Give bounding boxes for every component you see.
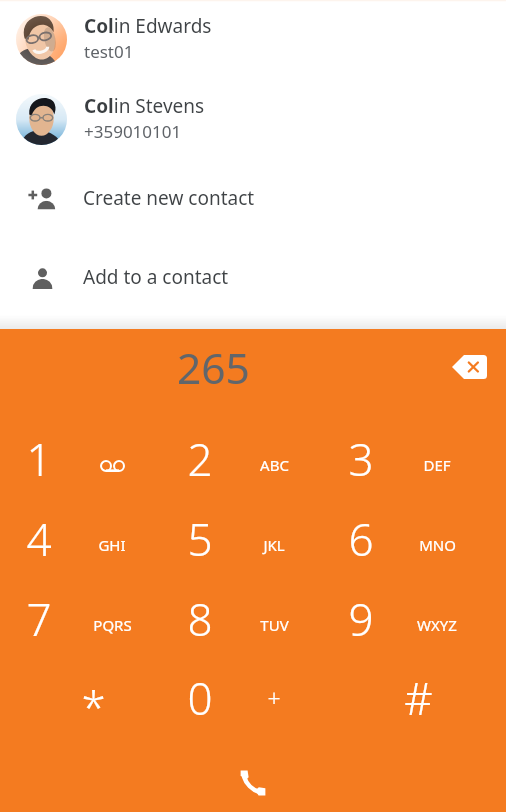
staticText: 0 <box>187 668 213 728</box>
staticText: +359010101 <box>84 120 182 143</box>
button[interactable]: Backspace <box>443 341 495 393</box>
staticText: 9 <box>348 589 374 649</box>
staticText: 2 <box>187 429 213 489</box>
staticText: 4 <box>26 509 52 569</box>
button[interactable]: 7 <box>0 580 169 660</box>
staticText: PQRS <box>93 615 132 635</box>
staticText: # <box>404 668 433 728</box>
staticText: * <box>81 677 106 737</box>
staticText: Add to a contact <box>83 264 229 290</box>
button[interactable]: Colin Edwards <box>0 0 506 80</box>
button[interactable]: 2 <box>169 420 338 500</box>
button[interactable]: 5 <box>169 500 338 580</box>
staticText: DEF <box>423 455 451 475</box>
staticText: 1 <box>26 429 52 489</box>
staticText: JKL <box>263 535 285 555</box>
staticText: Colin Stevens <box>84 93 205 119</box>
button[interactable]: Colin Stevens <box>0 80 506 160</box>
staticText: test01 <box>84 40 134 63</box>
button[interactable]: * <box>0 659 169 739</box>
button[interactable]: 6 <box>337 500 506 580</box>
button[interactable]: 8 <box>169 580 338 660</box>
button[interactable]: 9 <box>337 580 506 660</box>
button[interactable]: 0 <box>169 659 338 739</box>
staticText: 6 <box>348 509 374 569</box>
staticText: WXYZ <box>417 615 457 635</box>
button[interactable]: Add to a contact <box>0 238 506 318</box>
button[interactable]: 3 <box>337 420 506 500</box>
staticText: MNO <box>419 535 456 555</box>
button[interactable]: 1 <box>0 420 169 500</box>
staticText: 3 <box>348 429 374 489</box>
button[interactable]: Call <box>223 753 283 812</box>
staticText: GHI <box>98 535 126 555</box>
staticText: TUV <box>260 615 289 635</box>
staticText: Create new contact <box>83 185 255 211</box>
staticText: 7 <box>26 589 52 649</box>
button[interactable]: 4 <box>0 500 169 580</box>
button[interactable]: # <box>337 659 506 739</box>
staticText: 265 <box>177 339 250 397</box>
staticText: 5 <box>187 509 213 569</box>
staticText: ABC <box>260 455 289 475</box>
staticText: + <box>267 682 281 713</box>
button[interactable]: Create new contact <box>0 159 506 239</box>
staticText: 8 <box>187 589 213 649</box>
staticText: Colin Edwards <box>84 13 212 39</box>
